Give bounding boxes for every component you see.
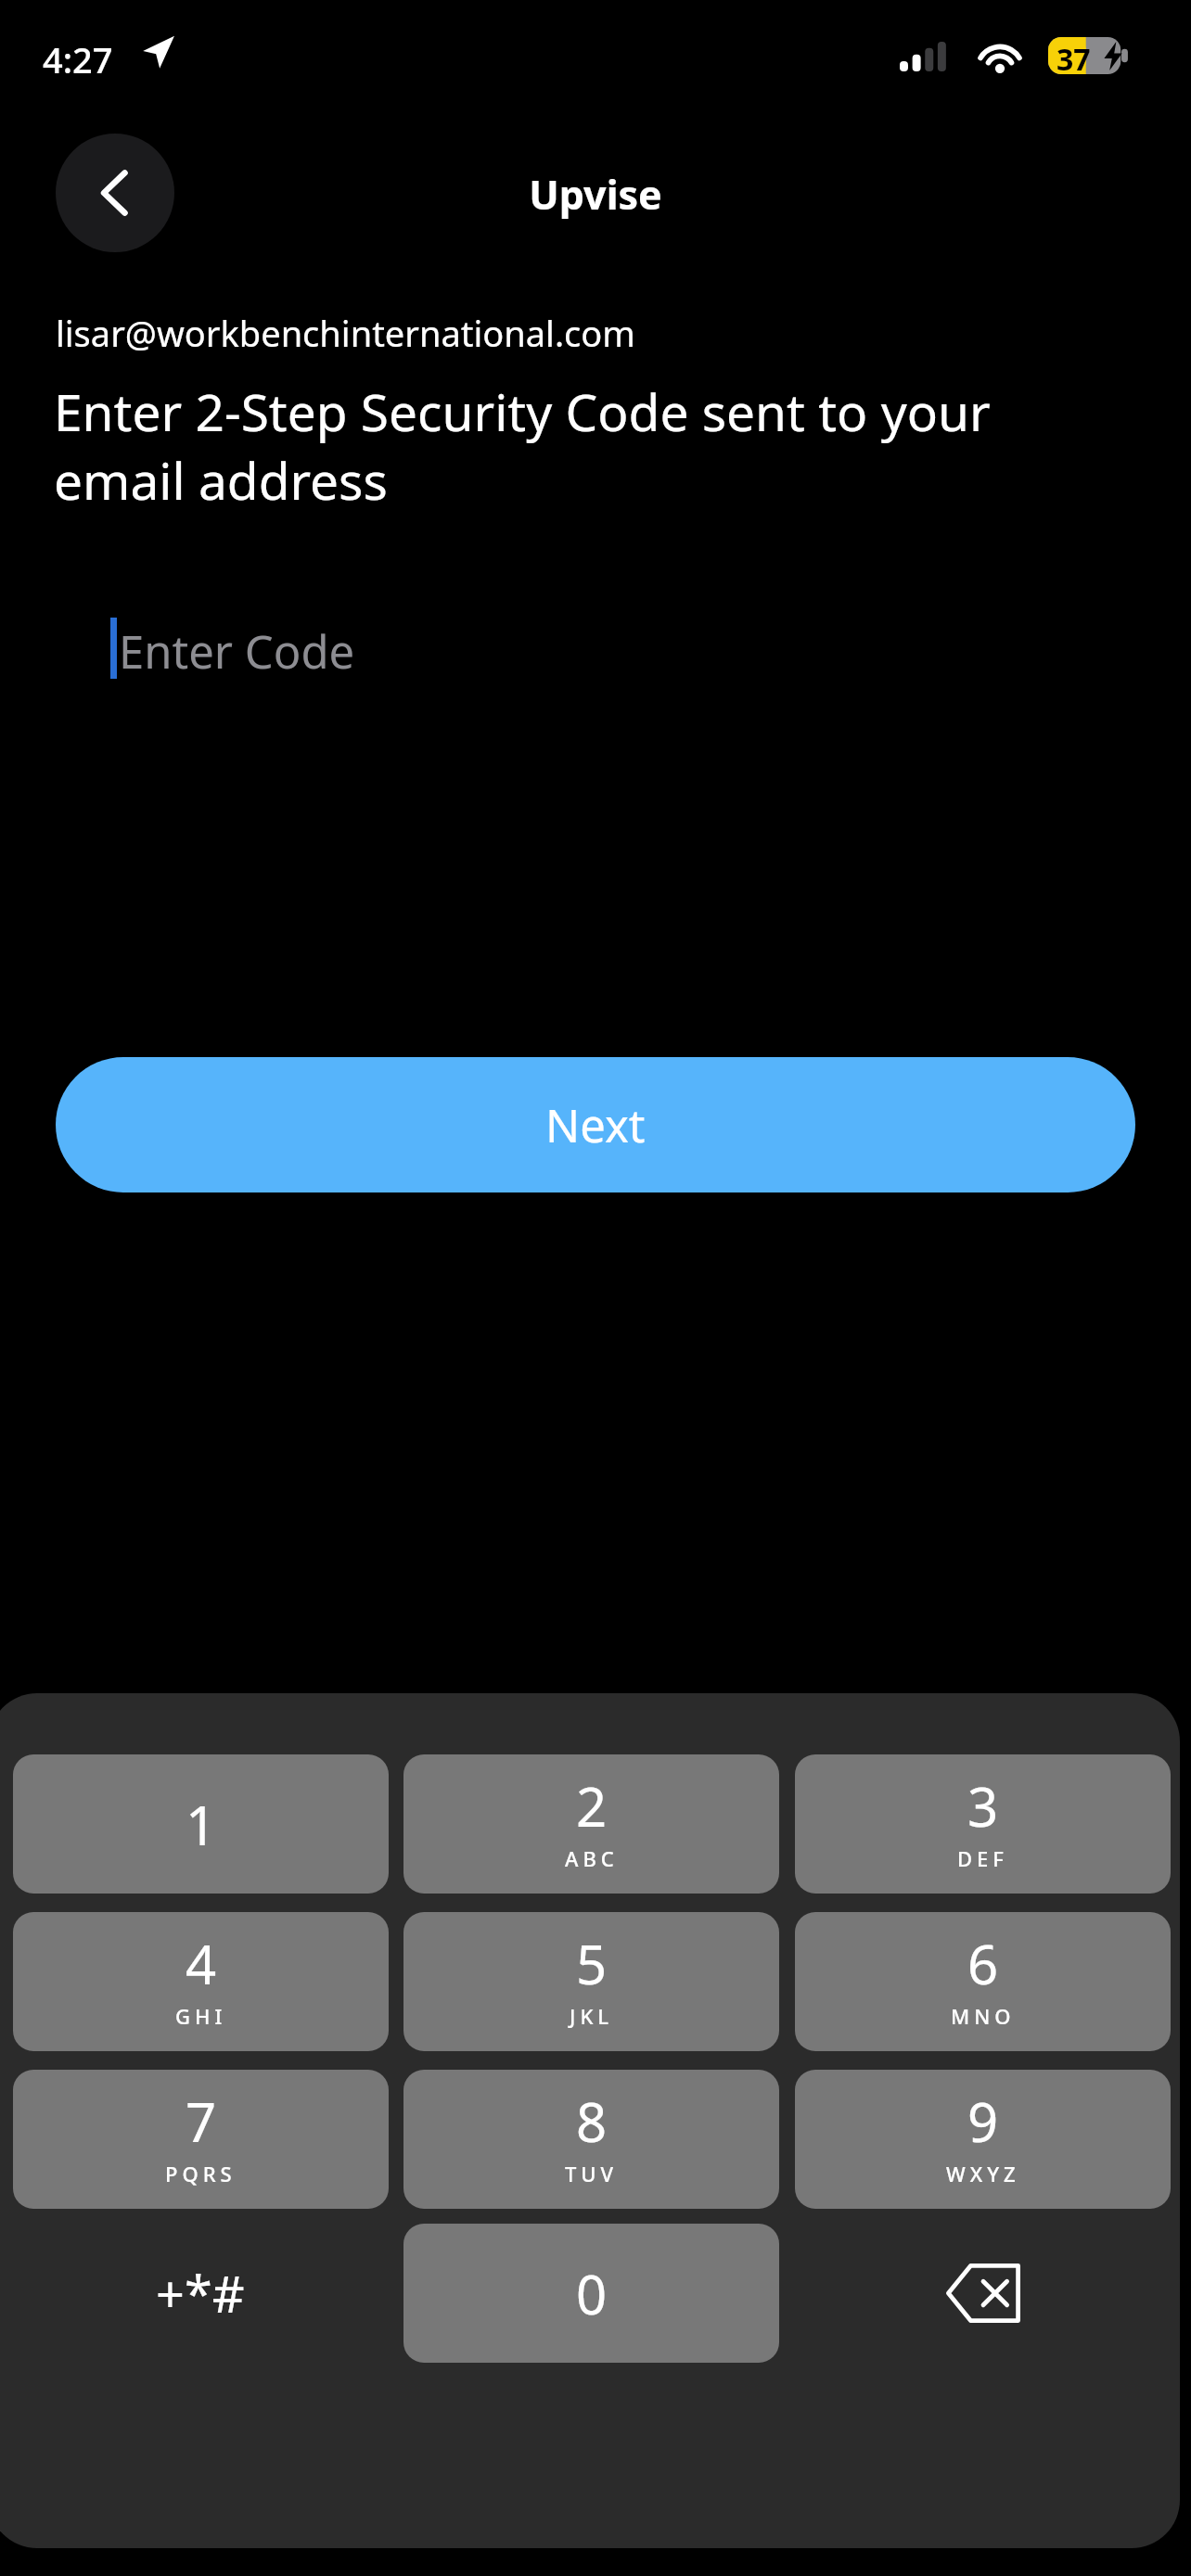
button[interactable]: 2 xyxy=(403,1754,779,1894)
staticText: 6 xyxy=(967,1927,999,2000)
staticText: WXYZ xyxy=(946,2160,1020,2187)
button[interactable]: 9 xyxy=(795,2070,1171,2209)
staticText: 8 xyxy=(576,2085,608,2158)
button[interactable]: 6 xyxy=(795,1912,1171,2051)
button[interactable]: Next xyxy=(56,1057,1135,1192)
staticText: 1 xyxy=(186,1788,217,1861)
button[interactable]: Back xyxy=(56,134,174,252)
button[interactable]: 8 xyxy=(403,2070,779,2209)
staticText: Enter 2-Step Security Code sent to your … xyxy=(54,376,1104,515)
button[interactable]: 4 xyxy=(13,1912,389,2051)
staticText: DEF xyxy=(957,1844,1008,1872)
staticText: JKL xyxy=(570,2002,614,2030)
staticText: 37 xyxy=(1057,39,1091,80)
staticText: Next xyxy=(545,1094,646,1156)
staticText: 9 xyxy=(967,2085,999,2158)
button[interactable]: 0 xyxy=(403,2224,779,2363)
button[interactable]: 3 xyxy=(795,1754,1171,1894)
staticText: 4 xyxy=(186,1927,217,2000)
staticText: ABC xyxy=(565,1844,619,1872)
staticText: TUV xyxy=(565,2160,619,2187)
button[interactable]: 5 xyxy=(403,1912,779,2051)
staticText: GHI xyxy=(175,2002,227,2030)
staticText: lisar@workbenchinternational.com xyxy=(56,309,635,357)
staticText: 3 xyxy=(967,1769,999,1843)
staticText: 4:27 xyxy=(43,35,113,83)
staticText: Upvise xyxy=(0,167,1191,222)
staticText: PQRS xyxy=(165,2160,237,2187)
button[interactable]: 7 xyxy=(13,2070,389,2209)
button[interactable]: +*# xyxy=(13,2224,387,2363)
staticText: MNO xyxy=(951,2002,1016,2030)
staticText: 5 xyxy=(576,1927,608,2000)
button[interactable]: 1 xyxy=(13,1754,389,1894)
staticText: 2 xyxy=(576,1769,608,1843)
staticText: 0 xyxy=(576,2257,608,2330)
staticText: +*# xyxy=(156,2259,245,2327)
button[interactable]: Backspace xyxy=(795,2224,1171,2363)
staticText: Enter Code xyxy=(119,620,355,682)
button[interactable]: Enter Code xyxy=(0,582,1191,712)
staticText: 7 xyxy=(186,2085,217,2158)
